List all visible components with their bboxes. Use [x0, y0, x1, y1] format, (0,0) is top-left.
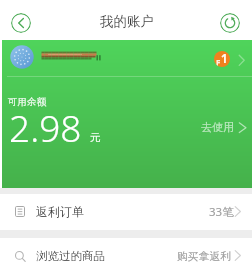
staticText: 浏览过的商品	[36, 249, 105, 263]
staticText: 返利订单	[36, 204, 84, 219]
button[interactable]: Back	[11, 13, 31, 33]
staticText: 我的账户	[100, 13, 154, 30]
staticText: 33笔	[209, 204, 234, 220]
button[interactable]: Refresh	[220, 13, 240, 33]
button[interactable]: 浏览过的商品	[0, 238, 252, 267]
staticText: 1	[221, 51, 228, 67]
staticText: 元	[90, 131, 101, 144]
button[interactable]: 返利订单	[0, 194, 252, 230]
staticText: 去使用	[201, 120, 234, 134]
button[interactable]: 去使用	[192, 116, 252, 140]
button[interactable]: F	[2, 40, 252, 76]
staticText: F	[216, 57, 221, 67]
staticText: 购买拿返利	[177, 250, 231, 264]
staticText: 可用余额	[8, 96, 46, 108]
staticText: 2.98	[9, 102, 82, 152]
